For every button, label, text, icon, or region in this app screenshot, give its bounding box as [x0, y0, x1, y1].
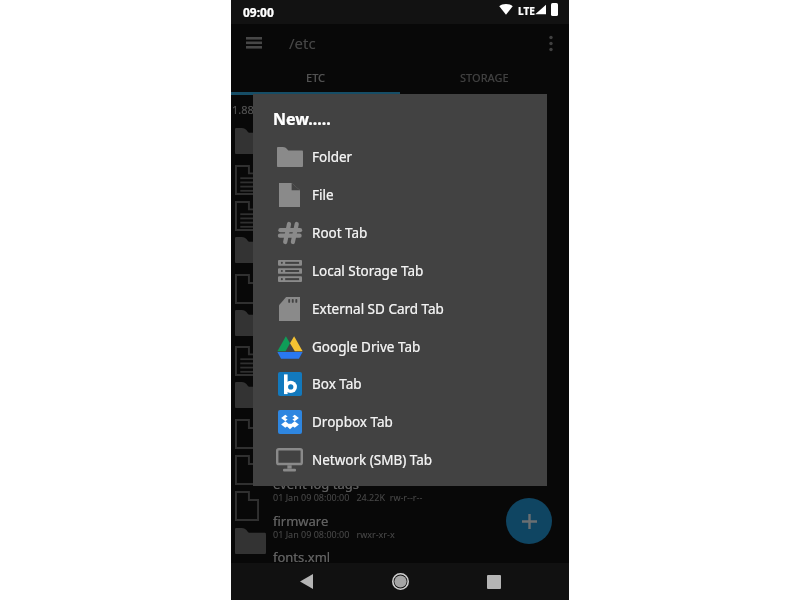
staticText: 01 Jan 09 08:00:00 14.20K rw-r--r--	[273, 564, 423, 576]
staticText: Root Tab	[312, 224, 368, 242]
button[interactable]: Menu	[235, 24, 273, 62]
staticText: 01 Jan 09 08:00:00 rwxr-xr-x	[273, 310, 395, 322]
button[interactable]: Back	[287, 563, 325, 600]
staticText: cgroups.json	[273, 185, 352, 203]
staticText: bluetooth	[273, 112, 333, 130]
staticText: gps.conf	[273, 439, 326, 457]
staticText: 09:00	[243, 4, 274, 20]
button[interactable]: apns-conf.xml	[231, 160, 569, 196]
button[interactable]: default.prop	[231, 269, 569, 305]
button[interactable]: STORAGE	[400, 62, 569, 92]
button[interactable]: event log tags	[231, 486, 569, 522]
button[interactable]: Google Drive Tab	[253, 328, 547, 366]
button[interactable]: Local Storage Tab	[253, 252, 547, 290]
staticText: apns-conf.xml	[273, 149, 359, 167]
staticText: hosts	[273, 403, 307, 421]
button[interactable]: Root Tab	[253, 214, 547, 252]
staticText: dhcpcd	[273, 221, 318, 239]
staticText: 01 Jan 09 08:00:00 rwxr-xr-x	[273, 237, 395, 249]
staticText: fonts.xml	[273, 548, 331, 566]
staticText: 01 Jan 09 08:00:00 rwxr-xr-x	[273, 382, 395, 394]
staticText: default.prop	[273, 258, 349, 276]
staticText: File	[312, 186, 334, 204]
button[interactable]: init	[231, 377, 569, 413]
button[interactable]: Home	[381, 563, 419, 600]
staticText: Folder	[312, 148, 353, 166]
staticText: firmware	[273, 294, 329, 312]
staticText: STORAGE	[460, 70, 509, 85]
button[interactable]: hosts	[231, 414, 569, 450]
staticText: /etc	[289, 33, 316, 53]
staticText: 01 Jan 09 08:00:00 1.20K rw-r--r--	[273, 274, 418, 286]
staticText: ETC	[306, 70, 326, 85]
staticText: External SD Card Tab	[312, 300, 444, 318]
staticText: firmware	[273, 512, 329, 530]
staticText: fonts.xml	[273, 330, 331, 348]
button[interactable]: Add	[506, 498, 552, 544]
staticText: Dropbox Tab	[312, 413, 393, 431]
button[interactable]: More options	[532, 24, 570, 62]
button[interactable]: gps.conf	[231, 450, 569, 486]
staticText: init	[273, 366, 293, 384]
staticText: 01 Jan 09 08:00:00 14.20K rw-r--r--	[273, 346, 423, 358]
staticText: 01 Jan 09 08:00:00 1.20K rw-r--r--	[273, 455, 418, 467]
button[interactable]: ETC	[231, 62, 400, 92]
button[interactable]: Folder	[253, 138, 547, 176]
button[interactable]: firmware	[231, 523, 569, 559]
button[interactable]: Box Tab	[253, 365, 547, 403]
button[interactable]: cgroups.json	[231, 196, 569, 232]
button[interactable]: dhcpcd	[231, 232, 569, 268]
button[interactable]: fonts.xml	[231, 341, 569, 377]
button[interactable]: Recents	[475, 563, 513, 600]
staticText: 01 Jan 09 08:00:00 24.22K rw-r--r--	[273, 491, 423, 503]
button[interactable]: fonts.xml	[231, 559, 569, 595]
button[interactable]: File	[253, 176, 547, 214]
staticText: Local Storage Tab	[312, 262, 424, 280]
staticText: Box Tab	[312, 375, 362, 393]
button[interactable]: firmware	[231, 305, 569, 341]
staticText: New.....	[273, 108, 331, 130]
staticText: 09:00	[243, 4, 274, 20]
button[interactable]: Network (SMB) Tab	[253, 441, 547, 479]
staticText: 01 Jan 09 08:00:00 24.22K rw-r--r--	[273, 165, 423, 177]
staticText: Network (SMB) Tab	[312, 451, 433, 469]
staticText: 01 Jan 09 08:00:00 60 rw-r--r--	[273, 419, 405, 431]
staticText: Google Drive Tab	[312, 338, 421, 356]
staticText: event log tags	[273, 475, 359, 493]
button[interactable]: Dropbox Tab	[253, 403, 547, 441]
staticText: 01 Jan 09 08:00:00 rwxr-xr-x	[273, 528, 395, 540]
staticText: LTE	[518, 4, 535, 18]
staticText: 01 Jan 09 08:00:00 4.22K rw-r--r--	[273, 201, 418, 213]
button[interactable]: External SD Card Tab	[253, 290, 547, 328]
staticText: 1.88G free / 2.75G	[232, 102, 325, 117]
button[interactable]: bluetooth	[231, 123, 569, 159]
staticText: LTE	[518, 4, 535, 18]
